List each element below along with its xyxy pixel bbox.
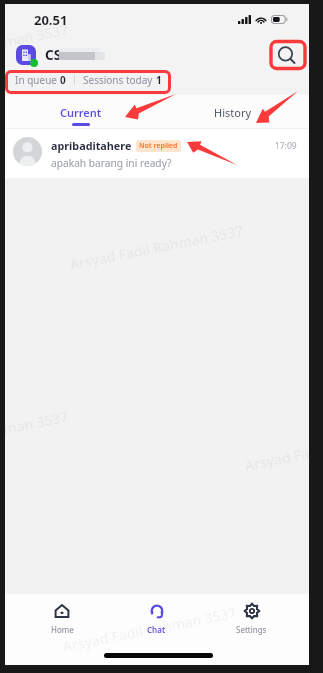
button[interactable]: Settings bbox=[204, 594, 299, 638]
button[interactable]: Chat bbox=[109, 594, 204, 638]
staticText: Current bbox=[60, 105, 102, 120]
staticText: Home bbox=[51, 624, 74, 635]
button[interactable]: apribaditahere bbox=[5, 129, 309, 178]
staticText: History bbox=[214, 105, 252, 120]
staticText: Not replied bbox=[139, 141, 178, 151]
staticText: 0 bbox=[60, 73, 66, 87]
staticText: CS bbox=[45, 46, 62, 64]
staticText: Sessions today bbox=[83, 73, 156, 87]
staticText: Arsyad Fadil Rahman 3537 bbox=[5, 19, 70, 73]
staticText: Settings bbox=[236, 624, 267, 635]
button[interactable]: History bbox=[157, 95, 309, 129]
staticText: 20.51 bbox=[34, 11, 68, 29]
button[interactable]: Current bbox=[5, 95, 157, 129]
staticText: 17:09 bbox=[275, 140, 297, 152]
staticText: apribaditahere bbox=[51, 138, 132, 153]
button[interactable]: Search bbox=[273, 42, 299, 68]
staticText: In queue bbox=[15, 73, 60, 87]
staticText: apakah barang ini ready? bbox=[51, 156, 172, 170]
button[interactable]: Home bbox=[15, 594, 109, 638]
staticText: 1 bbox=[156, 73, 162, 87]
staticText: Chat bbox=[147, 624, 166, 635]
staticText: Arsyad Fadil Rahman 3537 bbox=[61, 602, 238, 656]
